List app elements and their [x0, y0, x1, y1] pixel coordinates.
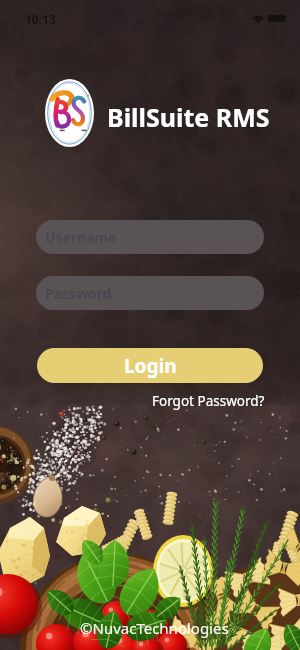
- other: Wi-Fi: [252, 14, 264, 23]
- staticText: BillSuite RMS: [107, 100, 270, 134]
- button[interactable]: Forgot Password?: [150, 390, 267, 412]
- button[interactable]: Password: [36, 276, 264, 310]
- button[interactable]: Login: [37, 348, 263, 383]
- button[interactable]: Username: [36, 220, 264, 254]
- staticText: ©NuvacTechnologies: [80, 618, 229, 638]
- staticText: 10:13: [25, 11, 56, 27]
- staticText: Forgot Password?: [152, 392, 265, 410]
- staticText: Password: [45, 284, 112, 303]
- staticText: Username: [45, 228, 117, 247]
- staticText: Login: [124, 353, 177, 379]
